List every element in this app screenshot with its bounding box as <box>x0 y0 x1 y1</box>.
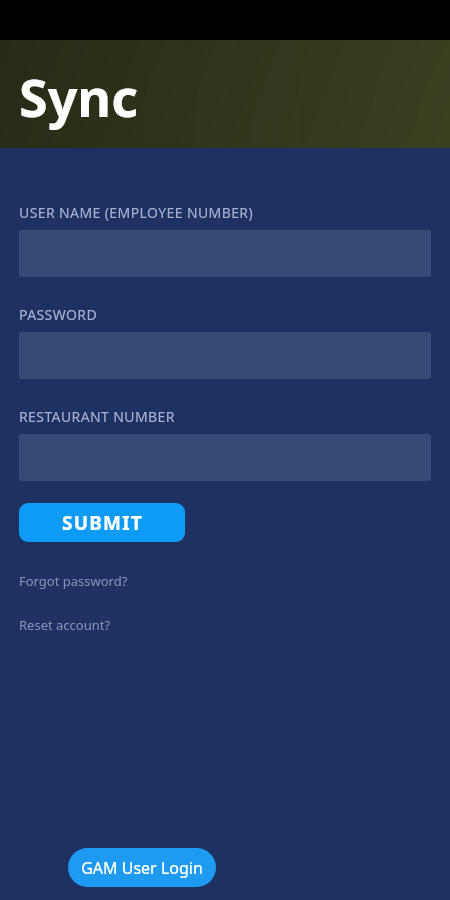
staticText: PASSWORD <box>19 305 98 324</box>
staticText: Sync <box>19 61 138 132</box>
staticText: Forgot password? <box>19 572 128 590</box>
button[interactable]: SUBMIT <box>19 503 185 542</box>
staticText: USER NAME (EMPLOYEE NUMBER) <box>19 203 254 222</box>
staticText: SUBMIT <box>62 510 143 536</box>
staticText: Reset account? <box>19 616 111 634</box>
button[interactable]: Reset account? <box>19 616 111 634</box>
staticText: GAM User Login <box>81 857 203 879</box>
button[interactable]: Forgot password? <box>19 572 128 590</box>
staticText: RESTAURANT NUMBER <box>19 407 175 426</box>
button[interactable]: GAM User Login <box>68 848 216 887</box>
